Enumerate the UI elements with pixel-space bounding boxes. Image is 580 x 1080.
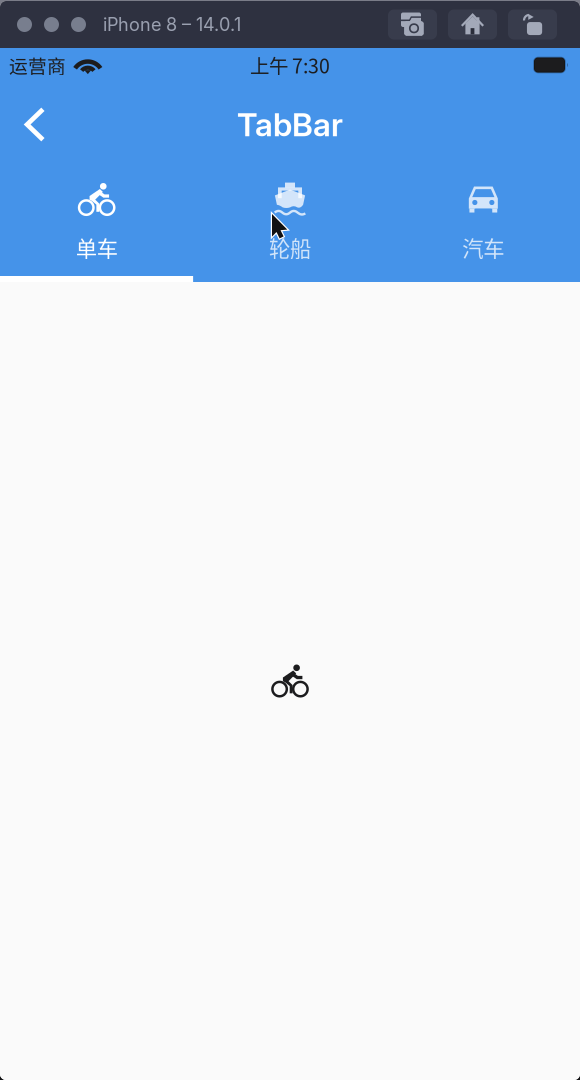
button[interactable]: Home bbox=[448, 9, 497, 39]
button[interactable]: 汽车 bbox=[387, 167, 580, 282]
staticText: 上午 7:30 bbox=[250, 51, 330, 79]
button[interactable]: Screenshot bbox=[388, 9, 437, 39]
staticText: 运营商 bbox=[9, 51, 66, 78]
button[interactable]: 单车 bbox=[0, 167, 193, 282]
staticText: 汽车 bbox=[462, 232, 504, 263]
staticText: iPhone 8 – 14.0.1 bbox=[103, 14, 241, 35]
staticText: TabBar bbox=[237, 105, 343, 144]
staticText: 轮船 bbox=[269, 232, 311, 263]
button[interactable]: 轮船 bbox=[193, 167, 387, 282]
staticText: 单车 bbox=[76, 232, 118, 263]
button[interactable]: Rotate bbox=[508, 9, 557, 39]
button[interactable]: Back bbox=[12, 101, 58, 147]
